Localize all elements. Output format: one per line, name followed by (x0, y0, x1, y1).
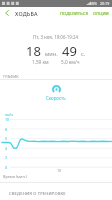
staticText: 0 (5, 165, 8, 170)
staticText: 10 (5, 117, 10, 122)
staticText: Пт, 3 ноя, 19:06-19:24 (33, 34, 79, 40)
staticText: 5,0 км/ч (61, 59, 80, 65)
staticText: 58% (90, 1, 98, 6)
staticText: 1,59 км (32, 59, 49, 65)
staticText: 6 (5, 136, 8, 141)
button[interactable]: ПОДЕЛИТЬСЯ (58, 11, 91, 17)
staticText: 4 (5, 146, 8, 151)
staticText: с. (81, 50, 86, 58)
staticText: 18 (26, 42, 41, 60)
button[interactable]: ОПЦИИ (91, 11, 111, 17)
button[interactable]: Back (1, 7, 13, 19)
staticText: СВЕДЕНИЯ О ТРЕНИРОВКЕ (9, 191, 66, 197)
button[interactable]: СВЕДЕНИЯ О ТРЕНИРОВКЕ (0, 183, 112, 200)
staticText: 20:19 (100, 1, 110, 6)
staticText: 8 (5, 127, 8, 132)
button[interactable]: Скорость (46, 95, 66, 101)
button[interactable]: ХОДЬБА (15, 10, 38, 17)
staticText: 49 (62, 42, 77, 60)
button[interactable]: Speed (51, 84, 62, 95)
staticText: мин. (45, 50, 58, 58)
staticText: Время (мин.) (3, 174, 27, 179)
staticText: ГРАФИК (3, 74, 19, 79)
staticText: км/ч (5, 112, 14, 117)
staticText: 10 (57, 168, 62, 173)
staticText: 2 (5, 155, 8, 160)
